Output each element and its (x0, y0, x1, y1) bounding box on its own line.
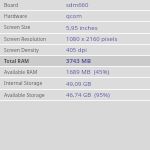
staticText: Screen Resolution (4, 36, 47, 43)
staticText: Hardware (4, 13, 28, 20)
button[interactable]: Screen Density (0, 45, 150, 55)
button[interactable]: Screen Size (0, 22, 150, 33)
staticText: 49,09 GB (66, 80, 92, 88)
button[interactable]: Total RAM (0, 56, 150, 66)
staticText: 46,74 GB (95%) (66, 91, 110, 99)
button[interactable]: Screen Resolution (0, 34, 150, 44)
staticText: sdm660 (66, 1, 89, 9)
staticText: Available Storage (4, 92, 45, 99)
staticText: 3743 MB (66, 57, 91, 65)
staticText: Available RAM (4, 69, 38, 76)
staticText: Total RAM (4, 58, 30, 65)
staticText: Screen Size (4, 24, 31, 31)
staticText: qcom (66, 12, 82, 20)
staticText: Internal Storage (4, 80, 43, 87)
button[interactable]: Available RAM (0, 67, 150, 77)
button[interactable]: Hardware (0, 11, 150, 21)
staticText: Board (4, 2, 19, 9)
staticText: 5,95 inches (66, 24, 98, 32)
staticText: 1080 x 2160 pixels (66, 35, 118, 43)
button[interactable]: Available Storage (0, 90, 150, 100)
button[interactable]: Board (0, 0, 150, 10)
staticText: Screen Density (4, 47, 39, 54)
button[interactable]: Internal Storage (0, 78, 150, 89)
staticText: 1689 MB (45%) (66, 68, 110, 76)
staticText: 405 dpi (66, 46, 87, 54)
